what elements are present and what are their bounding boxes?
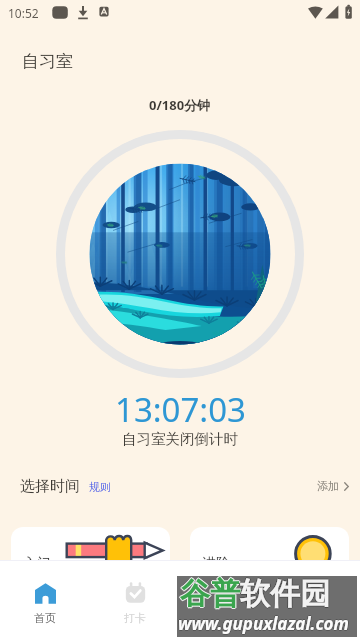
button[interactable]: 打卡	[90, 561, 180, 640]
staticText: www.gupuxlazal.com	[177, 612, 348, 635]
button[interactable]: 添加	[317, 479, 349, 493]
staticText: 首页	[34, 611, 56, 625]
staticText: 13:07:03	[115, 387, 246, 432]
staticText: 打卡	[124, 611, 146, 625]
staticText: www.gupuxlazal.com	[178, 613, 349, 636]
staticText: 谷普	[180, 575, 240, 613]
button[interactable]: 入门	[11, 527, 170, 622]
staticText: 软件园	[240, 574, 330, 612]
staticText: 入门	[23, 555, 51, 573]
staticText: 社区	[214, 611, 236, 625]
staticText: 谷普	[181, 575, 241, 613]
staticText: 软件园	[240, 575, 330, 613]
staticText: www.gupuxlazal.com	[178, 612, 349, 635]
staticText: 0/180分钟	[149, 96, 211, 114]
staticText: 谷普	[180, 576, 240, 614]
staticText: 软件园	[239, 575, 329, 613]
button[interactable]: 首页	[0, 561, 90, 640]
staticText: 添加	[317, 479, 339, 493]
staticText: 规则	[89, 480, 111, 494]
staticText: 软件园	[240, 576, 330, 614]
button[interactable]: 社区	[180, 561, 270, 640]
button[interactable]: 我的	[270, 561, 360, 640]
staticText: www.gupuxlazal.com	[179, 612, 350, 635]
staticText: 软件园	[241, 575, 331, 613]
staticText: 选择时间	[20, 477, 80, 496]
button[interactable]: 选择时间	[20, 477, 80, 496]
staticText: www.gupuxlazal.com	[178, 611, 349, 634]
button[interactable]: 进阶	[190, 527, 349, 622]
staticText: 谷普	[179, 575, 239, 613]
staticText: 进阶	[202, 555, 230, 573]
staticText: 谷普	[180, 574, 240, 612]
button[interactable]: 自习室	[22, 51, 73, 72]
staticText: 我的	[304, 611, 326, 625]
staticText: 10:52	[8, 5, 39, 21]
staticText: 自习室	[22, 51, 73, 72]
staticText: 自习室关闭倒计时	[122, 430, 238, 448]
button[interactable]: 规则	[89, 480, 111, 494]
